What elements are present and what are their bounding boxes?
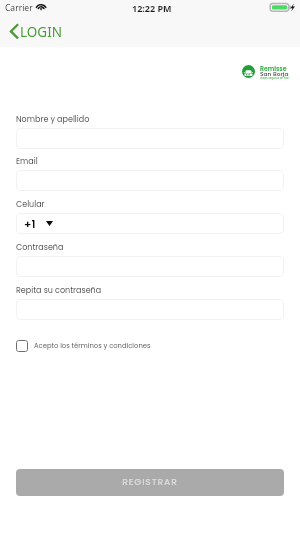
button[interactable] xyxy=(16,128,284,149)
staticText: Carrier xyxy=(5,2,33,14)
button[interactable]: +1 xyxy=(16,213,284,234)
staticText: +1 xyxy=(24,216,36,231)
staticText: Acepto los términos y condiciones xyxy=(34,341,151,351)
staticText: Repita su contraseña xyxy=(16,285,102,296)
staticText: Contraseña xyxy=(16,242,64,253)
button[interactable]: Back to LOGIN xyxy=(6,20,63,47)
staticText: LOGIN xyxy=(20,23,63,41)
staticText: Celular xyxy=(16,199,45,210)
staticText: 12:22 PM xyxy=(132,2,172,14)
button[interactable] xyxy=(16,170,284,191)
staticText: Nombre y apellido xyxy=(16,114,90,125)
staticText: viajes seguros en taxi xyxy=(260,76,289,80)
button[interactable]: Acepto los términos y condiciones xyxy=(16,340,151,352)
button[interactable] xyxy=(16,256,284,277)
staticText: San Borja xyxy=(260,70,289,78)
staticText: Email xyxy=(16,156,38,167)
button[interactable] xyxy=(16,299,284,320)
staticText: REGISTRAR xyxy=(122,476,178,489)
button[interactable]: REGISTRAR xyxy=(16,469,284,496)
staticText: Remisse xyxy=(260,64,287,73)
